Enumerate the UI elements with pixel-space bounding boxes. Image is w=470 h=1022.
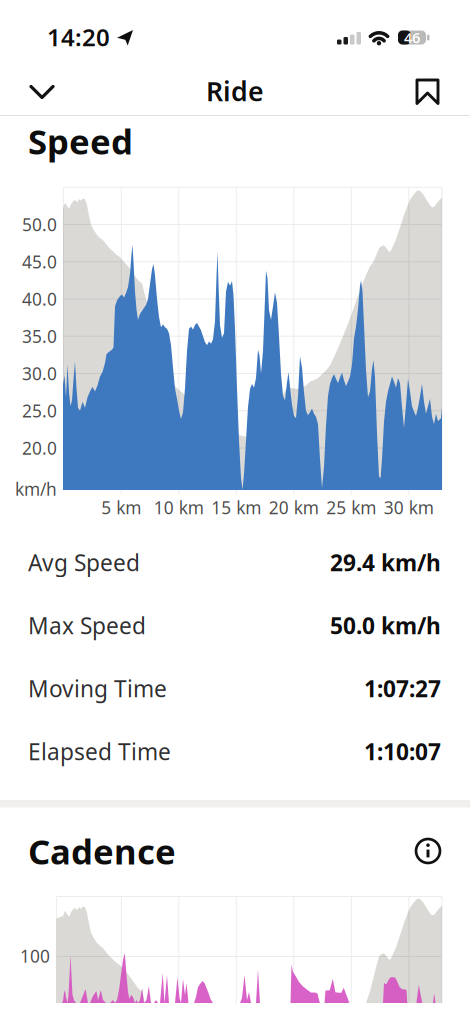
staticText: km/h (15, 477, 57, 500)
staticText: 50.0 (22, 213, 57, 236)
staticText: 14:20 (47, 21, 110, 53)
staticText: Elapsed Time (28, 736, 171, 766)
staticText: Moving Time (28, 673, 167, 703)
staticText: 10 km (154, 496, 204, 519)
button[interactable]: Close (20, 70, 64, 114)
button[interactable]: Save (403, 67, 451, 115)
staticText: 25.0 (22, 399, 57, 422)
staticText: 30.0 (22, 362, 57, 385)
staticText: 46 (404, 28, 420, 47)
staticText: Cadence (28, 828, 176, 874)
staticText: 1:10:07 (364, 736, 441, 766)
staticText: 45.0 (22, 250, 57, 273)
staticText: Ride (206, 73, 264, 109)
staticText: 1:07:27 (364, 673, 441, 703)
staticText: Avg Speed (28, 547, 140, 577)
staticText: Max Speed (28, 610, 146, 640)
staticText: 30 km (384, 496, 434, 519)
staticText: 25 km (326, 496, 376, 519)
staticText: 50.0 km/h (330, 610, 441, 640)
staticText: 5 km (101, 496, 141, 519)
staticText: 40.0 (22, 287, 57, 310)
staticText: 15 km (211, 496, 261, 519)
staticText: 100 (20, 944, 50, 967)
staticText: 35.0 (22, 325, 57, 348)
button[interactable]: About Cadence (406, 829, 450, 873)
staticText: 29.4 km/h (330, 547, 441, 577)
staticText: Speed (28, 118, 133, 164)
staticText: 20 km (269, 496, 319, 519)
staticText: 20.0 (22, 436, 57, 459)
